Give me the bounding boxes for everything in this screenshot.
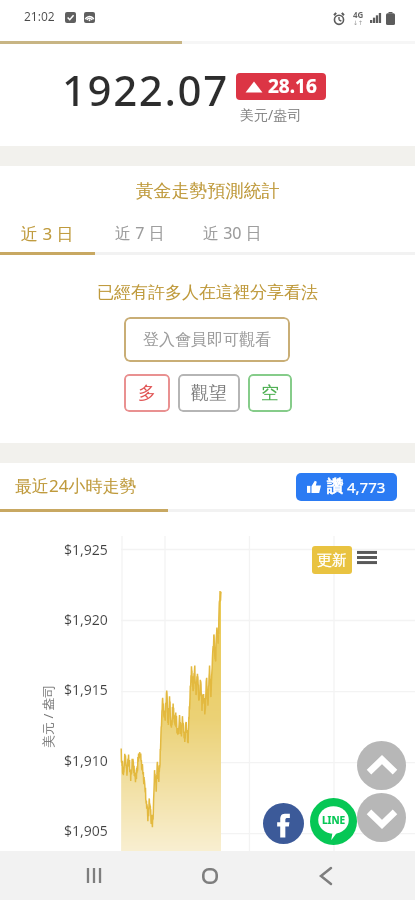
staticText: 4,773 xyxy=(347,477,386,497)
staticText: 近 7 日 xyxy=(115,222,165,244)
staticText: 4G xyxy=(353,9,364,20)
button[interactable]: 觀望 xyxy=(178,374,240,412)
button[interactable]: 登入會員即可觀看 xyxy=(124,317,290,362)
staticText: 美元 / 盎司 xyxy=(39,684,57,748)
staticText: 多 xyxy=(138,382,156,405)
staticText: 讚 xyxy=(327,477,343,497)
button[interactable]: Share on LINE xyxy=(310,798,357,845)
button[interactable]: 讚 xyxy=(296,473,397,501)
button[interactable]: 近 3 日 xyxy=(0,214,95,252)
button[interactable]: Home xyxy=(185,851,235,900)
button[interactable]: 近 7 日 xyxy=(95,214,185,252)
staticText: 美元/盎司 xyxy=(240,105,302,124)
button[interactable]: Recent apps xyxy=(69,851,119,900)
staticText: 空 xyxy=(261,382,279,405)
staticText: 觀望 xyxy=(191,382,227,405)
staticText: 21:02 xyxy=(24,8,55,24)
staticText: 黃金走勢預測統計 xyxy=(0,180,415,203)
button[interactable]: 更新 xyxy=(312,546,352,574)
staticText: 1922.07 xyxy=(62,61,229,118)
button[interactable]: Scroll down xyxy=(357,793,406,842)
staticText: 最近24小時走勢 xyxy=(15,474,137,497)
button[interactable]: Share on Facebook xyxy=(263,803,304,844)
staticText: $1,925 xyxy=(64,540,108,559)
staticText: $1,910 xyxy=(64,751,108,770)
staticText: 更新 xyxy=(317,551,347,570)
button[interactable]: Scroll up xyxy=(357,741,406,790)
staticText: 近 30 日 xyxy=(203,222,262,244)
button[interactable]: 28.16 xyxy=(236,73,326,100)
staticText: $1,915 xyxy=(64,680,108,699)
staticText: 近 3 日 xyxy=(21,222,74,245)
button[interactable]: 近 30 日 xyxy=(185,214,280,252)
staticText: 28.16 xyxy=(268,73,317,99)
button[interactable]: Menu xyxy=(357,551,377,564)
staticText: $1,905 xyxy=(64,821,108,840)
staticText: LINE xyxy=(322,813,346,827)
staticText: 已經有許多人在這裡分享看法 xyxy=(0,282,415,303)
button[interactable]: Back xyxy=(301,851,351,900)
button[interactable]: 空 xyxy=(248,374,292,412)
button[interactable]: 多 xyxy=(124,374,170,412)
staticText: $1,920 xyxy=(64,610,108,629)
staticText: ↓↑ xyxy=(353,19,364,26)
staticText: 登入會員即可觀看 xyxy=(143,330,271,350)
